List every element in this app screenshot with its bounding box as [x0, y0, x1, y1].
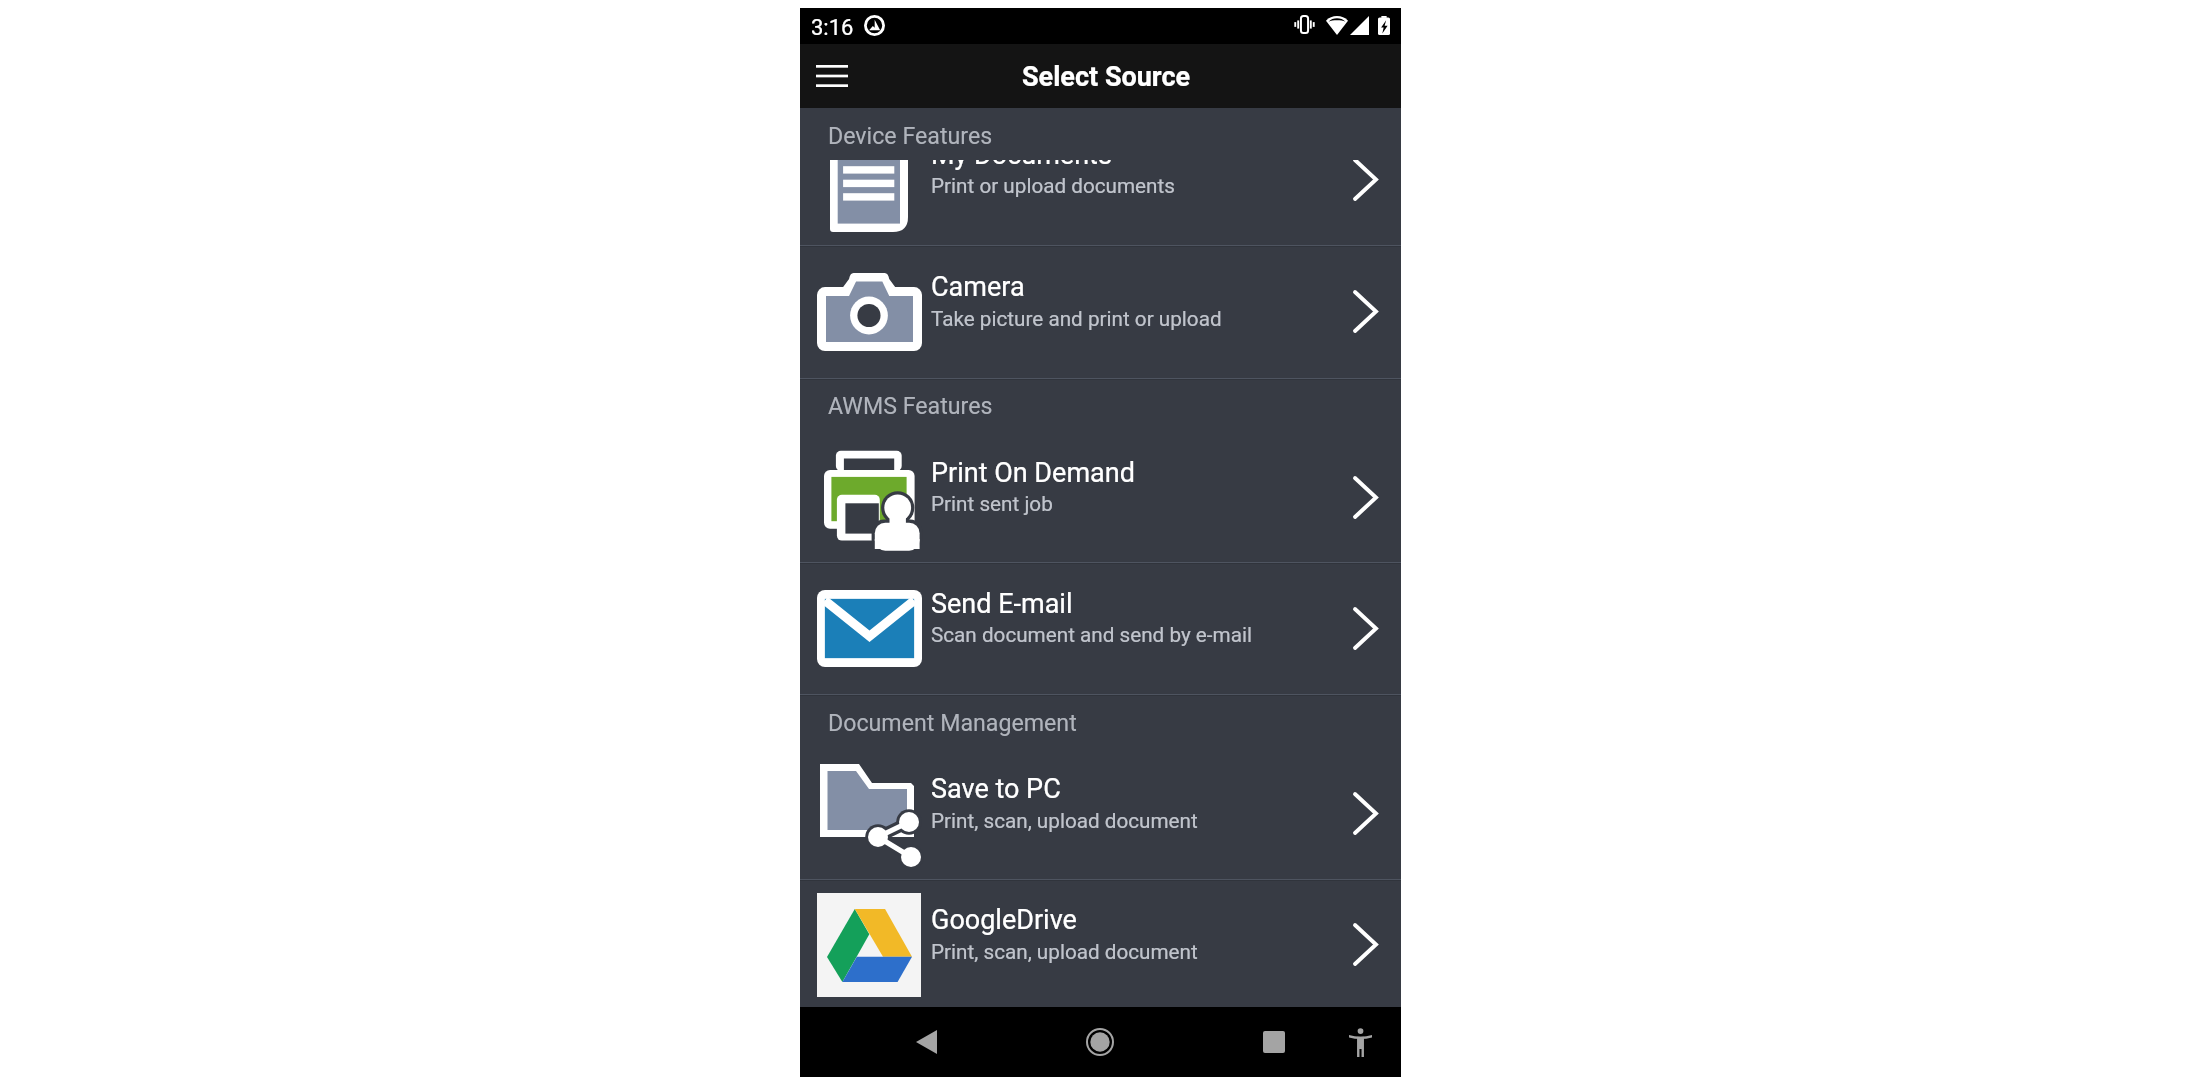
staticText: Device Features: [828, 122, 993, 149]
staticText: My Documents: [931, 139, 1112, 171]
staticText: Take picture and print or upload: [931, 307, 1222, 331]
staticText: Send E-mail: [931, 588, 1073, 620]
staticText: Scan document and send by e-mail: [931, 623, 1252, 647]
staticText: Print, scan, upload document: [931, 940, 1198, 964]
staticText: AWMS Features: [828, 392, 993, 419]
button[interactable]: Camera: [800, 245, 1401, 378]
staticText: Select Source: [1022, 61, 1191, 93]
staticText: Print or upload documents: [931, 174, 1175, 198]
staticText: Print On Demand: [931, 457, 1135, 489]
button[interactable]: Save to PC: [800, 748, 1401, 879]
staticText: 3:16: [811, 15, 854, 41]
button[interactable]: GoogleDrive: [800, 879, 1401, 1007]
button[interactable]: My Documents: [800, 113, 1401, 245]
button[interactable]: Send E-mail: [800, 562, 1401, 694]
staticText: Document Management: [828, 709, 1077, 736]
button[interactable]: Print On Demand: [800, 432, 1401, 562]
staticText: Print sent job: [931, 492, 1053, 516]
staticText: Save to PC: [931, 773, 1061, 805]
staticText: GoogleDrive: [931, 904, 1077, 936]
button[interactable]: Back: [891, 1007, 961, 1077]
button[interactable]: Home: [1065, 1007, 1135, 1077]
button[interactable]: Recent apps: [1239, 1007, 1309, 1077]
staticText: Print, scan, upload document: [931, 809, 1198, 833]
staticText: Camera: [931, 271, 1025, 303]
button[interactable]: Accessibility: [1325, 1007, 1395, 1077]
button[interactable]: Open navigation menu: [808, 52, 856, 100]
